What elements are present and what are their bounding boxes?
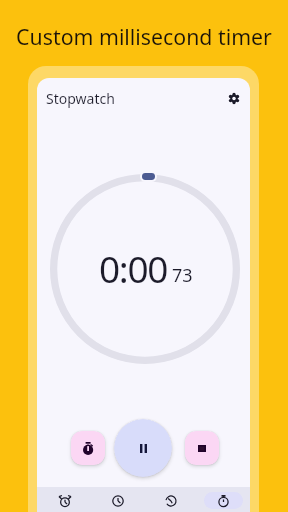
staticText: Custom millisecond timer bbox=[0, 22, 288, 51]
button[interactable]: Alarm bbox=[37, 487, 91, 512]
button[interactable]: Clock bbox=[91, 487, 144, 512]
button[interactable]: Stop bbox=[185, 431, 219, 465]
button[interactable]: Settings bbox=[223, 87, 245, 109]
staticText: 73 bbox=[172, 263, 193, 288]
button[interactable]: Stopwatch bbox=[197, 487, 250, 512]
button[interactable]: Lap bbox=[71, 431, 105, 465]
staticText: 0:00 bbox=[99, 243, 168, 293]
button[interactable]: Timer bbox=[144, 487, 197, 512]
staticText: Stopwatch bbox=[46, 89, 115, 108]
button[interactable]: Pause bbox=[114, 419, 172, 477]
